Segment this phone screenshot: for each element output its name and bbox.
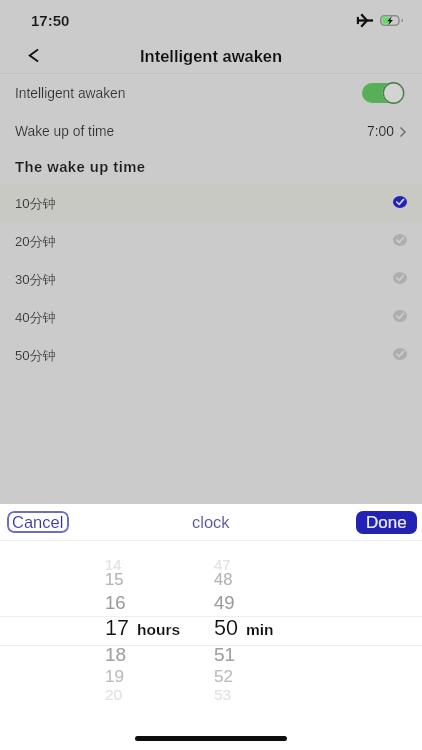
staticText: 10分钟 xyxy=(15,195,57,212)
staticText: 15 xyxy=(105,570,124,588)
staticText: 20分钟 xyxy=(15,233,57,250)
staticText: 17:50 xyxy=(31,12,70,29)
staticText: 17 xyxy=(105,616,129,640)
staticText: 47 xyxy=(214,556,231,573)
button[interactable]: 20分钟 xyxy=(0,222,422,260)
staticText: 50 xyxy=(214,616,238,640)
staticText: Cancel xyxy=(12,513,64,531)
button[interactable]: 30分钟 xyxy=(0,260,422,298)
staticText: 7:00 xyxy=(367,124,394,139)
other: Airplane mode xyxy=(357,14,373,27)
staticText: The wake up time xyxy=(15,159,146,176)
staticText: clock xyxy=(192,513,230,531)
staticText: 49 xyxy=(214,592,235,613)
staticText: 40分钟 xyxy=(15,309,57,326)
button[interactable]: Back xyxy=(15,41,51,70)
staticText: min xyxy=(246,621,274,638)
staticText: hours xyxy=(137,621,181,638)
staticText: 18 xyxy=(105,644,127,665)
staticText: Intelligent awaken xyxy=(15,86,126,101)
button[interactable]: 10分钟 xyxy=(0,184,422,222)
other: Battery charging xyxy=(380,15,403,26)
staticText: Wake up of time xyxy=(15,124,115,139)
staticText: 51 xyxy=(214,644,236,665)
button[interactable]: Cancel xyxy=(7,511,69,533)
button[interactable]: Done xyxy=(356,511,417,534)
staticText: 16 xyxy=(105,592,126,613)
staticText: 53 xyxy=(214,686,232,703)
staticText: Intelligent awaken xyxy=(140,47,283,65)
staticText: 20 xyxy=(105,686,123,703)
button[interactable]: Intelligent awaken xyxy=(0,74,422,112)
button[interactable]: 40分钟 xyxy=(0,298,422,336)
staticText: 50分钟 xyxy=(15,347,57,364)
staticText: 48 xyxy=(214,570,233,588)
staticText: 19 xyxy=(105,667,124,686)
button[interactable]: 50分钟 xyxy=(0,336,422,374)
staticText: 14 xyxy=(105,556,122,573)
staticText: Done xyxy=(366,513,407,532)
staticText: 52 xyxy=(214,667,233,686)
button[interactable]: Intelligent awaken toggle xyxy=(362,83,404,103)
button[interactable]: Wake up of time xyxy=(0,112,422,150)
staticText: 30分钟 xyxy=(15,271,57,288)
